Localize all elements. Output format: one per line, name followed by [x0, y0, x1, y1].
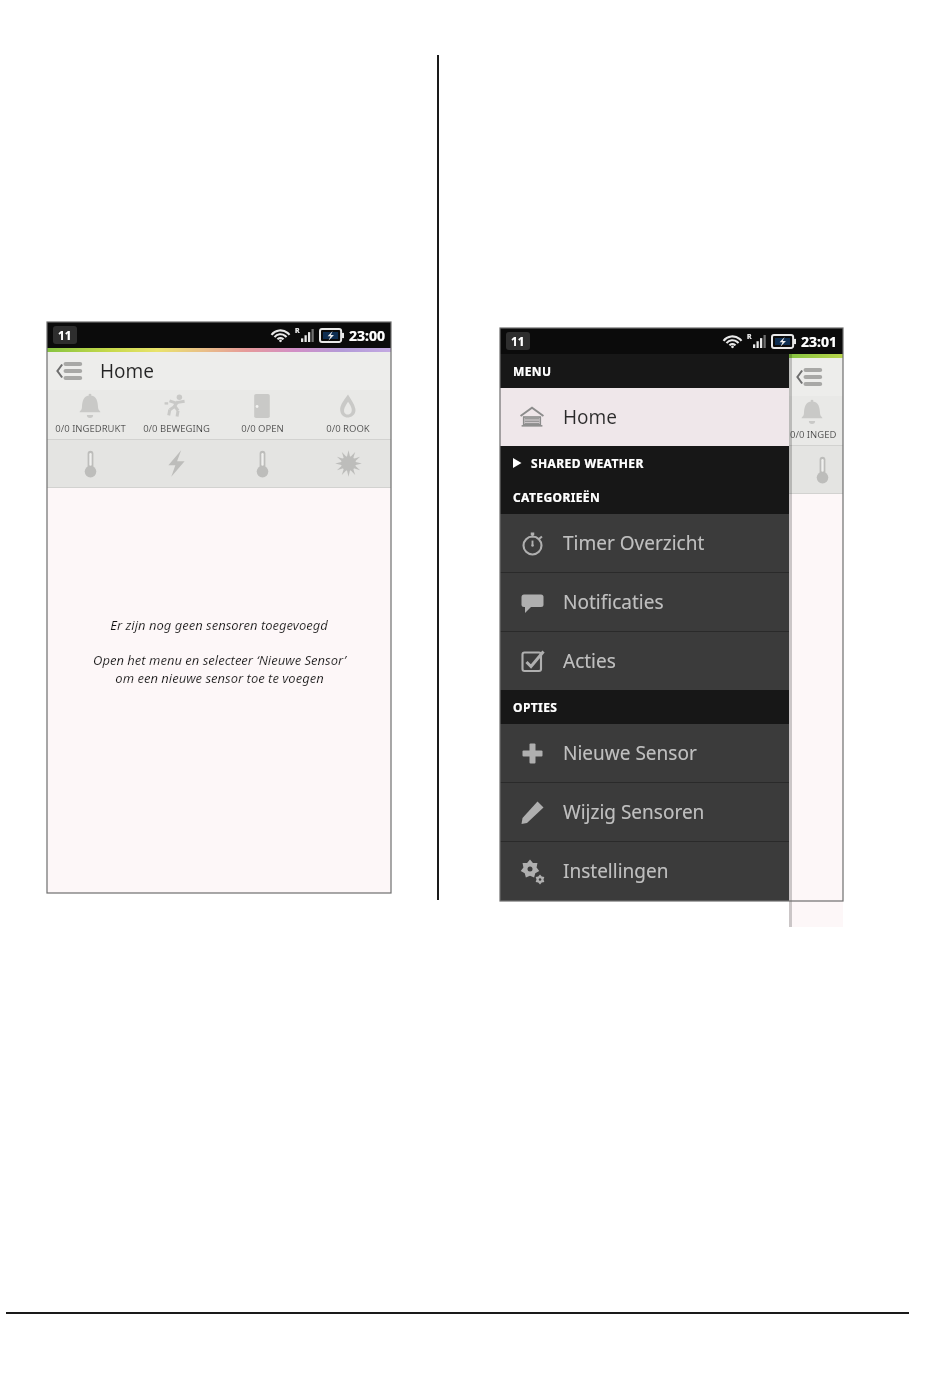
button[interactable]: Wijzig Sensoren: [500, 783, 843, 841]
staticText: MENU: [513, 363, 552, 379]
staticText: Wijzig Sensoren: [563, 799, 705, 825]
button[interactable]: 0/0 ROOK: [305, 390, 391, 439]
staticText: 0/0 BEWEGING: [143, 422, 210, 435]
button[interactable]: Open menu: [47, 352, 391, 390]
staticText: Timer Overzicht: [563, 530, 705, 556]
button[interactable]: Temperature: [47, 440, 133, 487]
staticText: Notificaties: [563, 589, 664, 615]
staticText: 0/0 OPEN: [241, 422, 284, 435]
button[interactable]: Open menu: [54, 356, 88, 386]
staticText: 0/0 ROOK: [326, 422, 370, 435]
button[interactable]: Power: [133, 440, 219, 487]
staticText: 0/0 INGED: [790, 428, 837, 441]
staticText: Home: [100, 358, 155, 384]
staticText: Open het menu en selecteer ‘Nieuwe Senso…: [93, 651, 346, 687]
staticText: CATEGORIEËN: [513, 489, 601, 505]
button[interactable]: SHARED WEATHER: [500, 446, 843, 480]
staticText: Nieuwe Sensor: [563, 740, 697, 766]
staticText: Instellingen: [563, 858, 669, 884]
button[interactable]: Notificaties: [500, 573, 843, 631]
staticText: R: [295, 326, 300, 336]
button[interactable]: Light: [305, 440, 391, 487]
button[interactable]: Home: [500, 388, 843, 446]
button[interactable]: CATEGORIEËN: [500, 480, 843, 514]
button[interactable]: 0/0 OPEN: [219, 390, 305, 439]
staticText: Home: [563, 404, 618, 430]
staticText: SHARED WEATHER: [531, 455, 644, 471]
button[interactable]: Timer Overzicht: [500, 514, 843, 572]
staticText: 11: [511, 333, 525, 349]
button[interactable]: 0/0 INGEDRUKT: [47, 390, 133, 439]
button[interactable]: OPTIES: [500, 690, 843, 724]
staticText: Acties: [563, 648, 616, 674]
staticText: R: [747, 332, 752, 342]
button[interactable]: Temperature 2: [219, 440, 305, 487]
button[interactable]: 0/0 BEWEGING: [133, 390, 219, 439]
button[interactable]: Acties: [500, 632, 843, 690]
staticText: 11: [58, 327, 72, 343]
button[interactable]: MENU: [500, 354, 843, 388]
staticText: OPTIES: [513, 699, 558, 715]
staticText: 23:01: [801, 332, 837, 351]
staticText: Er zijn nog geen sensoren toegevoegd: [110, 616, 328, 634]
staticText: 23:00: [349, 326, 385, 345]
staticText: 0/0 INGEDRUKT: [55, 422, 126, 435]
button[interactable]: Nieuwe Sensor: [500, 724, 843, 782]
button[interactable]: Instellingen: [500, 842, 843, 900]
